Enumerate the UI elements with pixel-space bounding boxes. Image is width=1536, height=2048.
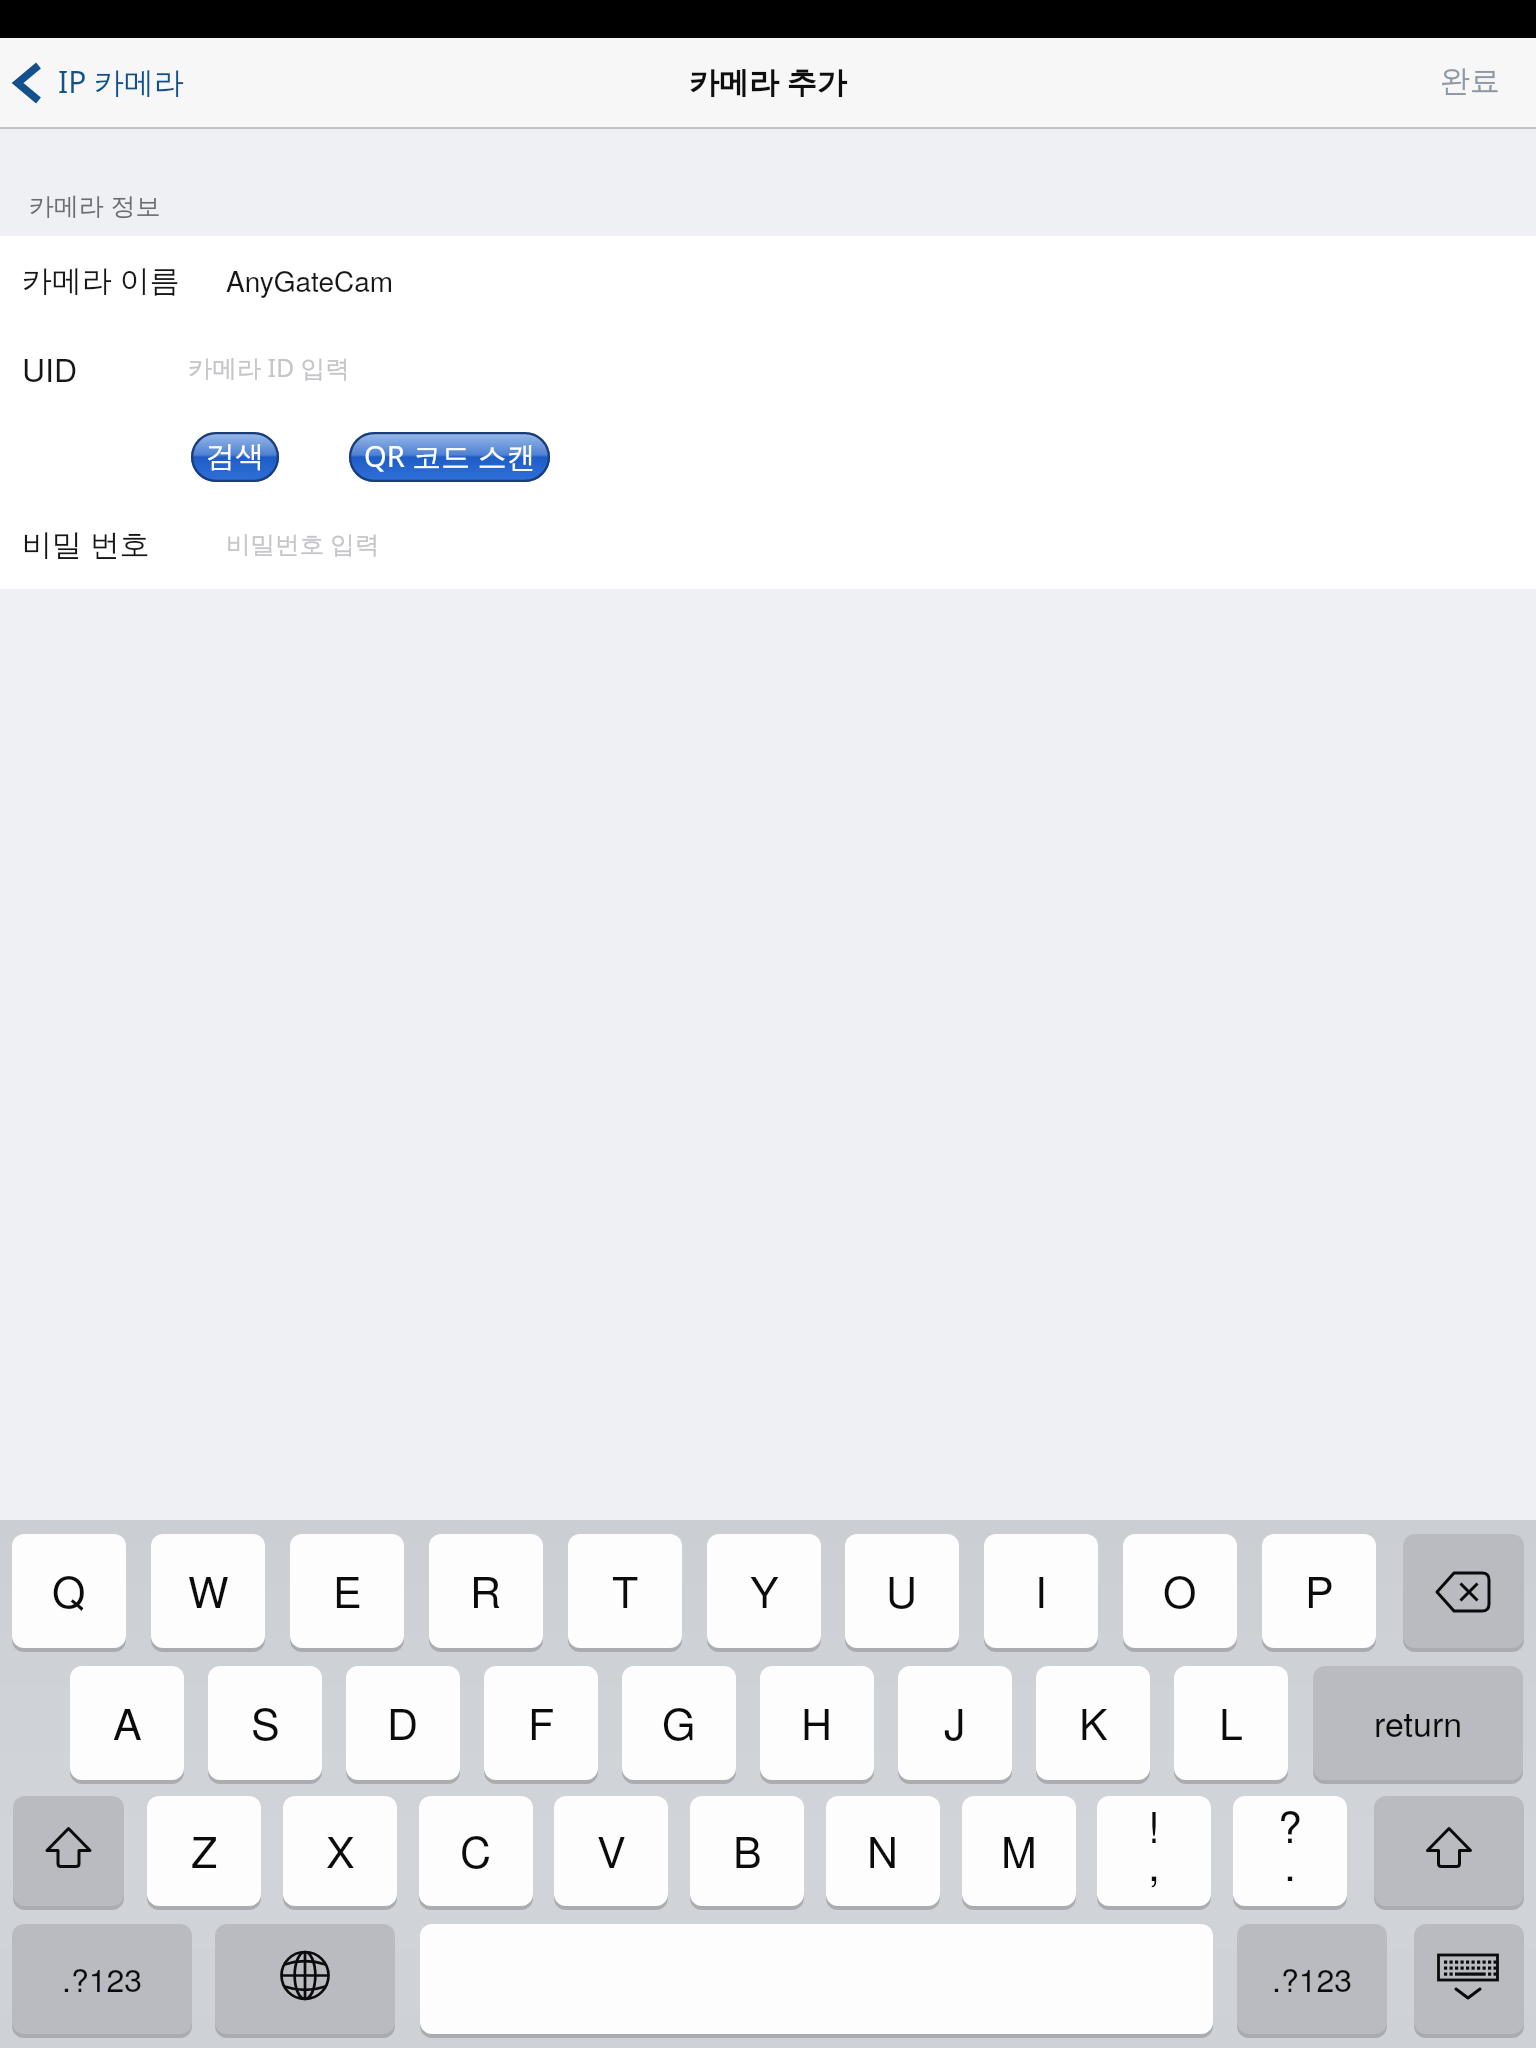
- button[interactable]: T: [568, 1534, 682, 1648]
- button[interactable]: H: [760, 1666, 874, 1780]
- staticText: F: [528, 1691, 555, 1753]
- staticText: V: [597, 1819, 626, 1881]
- staticText: L: [1219, 1691, 1243, 1753]
- button[interactable]: J: [898, 1666, 1012, 1780]
- button[interactable]: Q: [12, 1534, 126, 1648]
- button[interactable]: C: [419, 1796, 533, 1906]
- button[interactable]: E: [290, 1534, 404, 1648]
- staticText: QR 코드 스캔: [364, 436, 536, 476]
- button[interactable]: A: [70, 1666, 184, 1780]
- button[interactable]: K: [1036, 1666, 1150, 1780]
- staticText: 카메라 이름: [22, 259, 180, 300]
- button[interactable]: .?123: [12, 1924, 192, 2034]
- button[interactable]: P: [1262, 1534, 1376, 1648]
- button[interactable]: UID: [0, 324, 1536, 412]
- button[interactable]: Z: [147, 1796, 261, 1906]
- staticText: H: [801, 1691, 833, 1753]
- staticText: M: [1001, 1819, 1037, 1881]
- staticText: 카메라 ID 입력: [188, 351, 350, 384]
- staticText: B: [733, 1819, 762, 1881]
- button[interactable]: .?123: [1237, 1924, 1387, 2034]
- staticText: U: [886, 1559, 918, 1621]
- staticText: G: [662, 1691, 696, 1753]
- button[interactable]: 비밀 번호: [0, 500, 1536, 588]
- button[interactable]: Backspace: [1403, 1534, 1524, 1648]
- staticText: Q: [52, 1559, 86, 1621]
- staticText: 비밀번호 입력: [226, 527, 380, 560]
- staticText: IP 카메라: [58, 61, 185, 102]
- staticText: ?: [1278, 1796, 1302, 1856]
- button[interactable]: V: [554, 1796, 668, 1906]
- button[interactable]: ?: [1233, 1796, 1347, 1906]
- button[interactable]: O: [1123, 1534, 1237, 1648]
- staticText: .?123: [62, 1955, 143, 2001]
- staticText: 카메라 추가: [689, 61, 847, 102]
- staticText: UID: [22, 345, 78, 391]
- staticText: K: [1079, 1691, 1108, 1753]
- staticText: ,: [1148, 1832, 1160, 1894]
- button[interactable]: Y: [707, 1534, 821, 1648]
- staticText: .: [1284, 1832, 1296, 1894]
- staticText: A: [113, 1691, 142, 1753]
- button[interactable]: 완료: [1404, 42, 1536, 124]
- button[interactable]: M: [962, 1796, 1076, 1906]
- button[interactable]: Hide keyboard: [1414, 1924, 1524, 2034]
- staticText: O: [1163, 1559, 1197, 1621]
- button[interactable]: Shift: [13, 1796, 124, 1906]
- button[interactable]: F: [484, 1666, 598, 1780]
- button[interactable]: W: [151, 1534, 265, 1648]
- button[interactable]: 검색: [191, 432, 279, 482]
- staticText: P: [1305, 1559, 1334, 1621]
- button[interactable]: U: [845, 1534, 959, 1648]
- staticText: Y: [750, 1559, 779, 1621]
- staticText: 완료: [1440, 62, 1500, 100]
- staticText: I: [1035, 1559, 1047, 1621]
- staticText: D: [387, 1691, 419, 1753]
- button[interactable]: R: [429, 1534, 543, 1648]
- staticText: return: [1374, 1698, 1463, 1747]
- button[interactable]: L: [1174, 1666, 1288, 1780]
- staticText: T: [612, 1559, 639, 1621]
- button[interactable]: IP 카메라: [0, 46, 207, 120]
- button[interactable]: X: [283, 1796, 397, 1906]
- button[interactable]: 카메라 이름: [0, 236, 1536, 324]
- button[interactable]: G: [622, 1666, 736, 1780]
- staticText: N: [867, 1819, 899, 1881]
- staticText: C: [460, 1819, 492, 1881]
- button[interactable]: D: [346, 1666, 460, 1780]
- staticText: 카메라 정보: [29, 188, 161, 222]
- staticText: Z: [191, 1819, 218, 1881]
- button[interactable]: return: [1313, 1666, 1523, 1780]
- staticText: E: [333, 1559, 362, 1621]
- staticText: 비밀 번호: [22, 523, 150, 564]
- staticText: 검색: [206, 438, 264, 475]
- staticText: !: [1148, 1796, 1160, 1856]
- button[interactable]: B: [690, 1796, 804, 1906]
- button[interactable]: I: [984, 1534, 1098, 1648]
- button[interactable]: Shift: [1374, 1796, 1524, 1906]
- staticText: W: [188, 1559, 229, 1621]
- button[interactable]: !: [1097, 1796, 1211, 1906]
- staticText: R: [470, 1559, 502, 1621]
- button[interactable]: Switch keyboard: [215, 1924, 395, 2034]
- button[interactable]: S: [208, 1666, 322, 1780]
- staticText: J: [944, 1691, 966, 1753]
- staticText: S: [251, 1691, 280, 1753]
- staticText: X: [326, 1819, 355, 1881]
- staticText: AnyGateCam: [226, 260, 394, 300]
- button[interactable]: QR 코드 스캔: [349, 432, 550, 482]
- staticText: .?123: [1272, 1955, 1353, 2001]
- button[interactable]: N: [826, 1796, 940, 1906]
